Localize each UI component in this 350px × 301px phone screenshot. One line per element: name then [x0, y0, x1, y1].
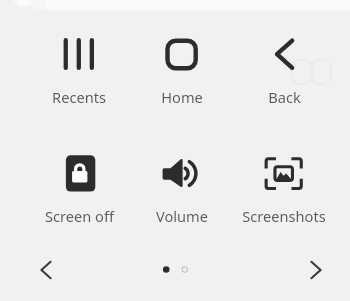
button[interactable]: Page indicator: [150, 256, 201, 283]
staticText: Home: [161, 87, 203, 107]
staticText: Volume: [156, 206, 208, 226]
button[interactable]: Back: [233, 32, 335, 112]
staticText: Recents: [52, 87, 106, 107]
button[interactable]: Home: [131, 32, 233, 112]
staticText: Screenshots: [242, 206, 326, 226]
button[interactable]: Volume: [131, 151, 233, 231]
button[interactable]: Screenshots: [233, 151, 335, 231]
button[interactable]: Screen off: [28, 151, 130, 231]
button[interactable]: Next page: [300, 254, 332, 286]
button[interactable]: Recents: [28, 32, 130, 112]
button[interactable]: Previous page: [30, 254, 62, 286]
staticText: Screen off: [45, 206, 114, 226]
staticText: Back: [268, 87, 301, 107]
